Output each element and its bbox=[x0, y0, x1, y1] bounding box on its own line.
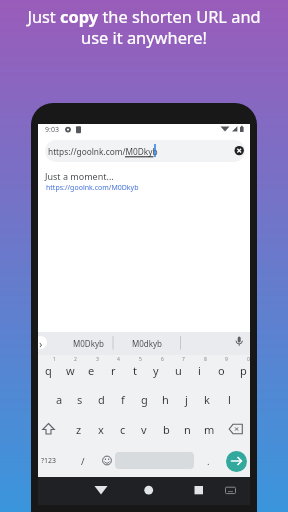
button[interactable]: . bbox=[178, 449, 238, 473]
staticText: z bbox=[76, 422, 82, 437]
staticText: 7 bbox=[182, 356, 185, 363]
button[interactable]: i bbox=[169, 358, 229, 382]
button[interactable]: a bbox=[38, 387, 89, 411]
button[interactable] bbox=[45, 140, 245, 162]
button[interactable] bbox=[100, 453, 114, 468]
staticText: . bbox=[207, 455, 210, 468]
button[interactable]: M0dkyb bbox=[117, 331, 177, 355]
staticText: e bbox=[88, 363, 95, 378]
staticText: n bbox=[184, 422, 191, 437]
staticText: 0 bbox=[247, 356, 250, 363]
staticText: k bbox=[204, 392, 210, 407]
button[interactable]: c bbox=[93, 417, 153, 441]
staticText: 2 bbox=[74, 356, 77, 363]
staticText: 8 bbox=[204, 356, 207, 363]
staticText: x bbox=[98, 422, 104, 437]
button[interactable]: w bbox=[40, 358, 100, 382]
button[interactable]: f bbox=[93, 387, 153, 411]
button[interactable]: https://goolnk.com/M0Dkyb bbox=[46, 182, 166, 194]
staticText: b bbox=[163, 422, 170, 437]
staticText: › bbox=[39, 336, 43, 349]
staticText: f bbox=[121, 392, 125, 407]
staticText: c bbox=[120, 422, 126, 437]
staticText: r bbox=[111, 363, 116, 378]
button[interactable]: t bbox=[105, 358, 165, 382]
staticText: t bbox=[133, 363, 137, 378]
button[interactable]: b bbox=[136, 417, 196, 441]
button[interactable]: x bbox=[71, 417, 131, 441]
button[interactable]: g bbox=[114, 387, 174, 411]
staticText: h bbox=[162, 392, 169, 407]
staticText: q bbox=[45, 363, 52, 378]
button[interactable]: z bbox=[49, 417, 109, 441]
button[interactable] bbox=[226, 451, 247, 472]
button[interactable]: l bbox=[199, 387, 250, 411]
button[interactable]: y bbox=[126, 358, 186, 382]
button[interactable]: ?123 bbox=[38, 449, 79, 473]
button[interactable]: › bbox=[38, 336, 47, 349]
staticText: u bbox=[175, 363, 182, 378]
staticText: s bbox=[77, 392, 83, 407]
button[interactable]: q bbox=[38, 358, 78, 382]
staticText: Just copy the shorten URL and use it any… bbox=[0, 5, 288, 49]
button[interactable]: s bbox=[50, 387, 110, 411]
button[interactable] bbox=[231, 143, 247, 159]
button[interactable] bbox=[222, 482, 239, 498]
button[interactable] bbox=[232, 335, 247, 350]
staticText: https://goolnk.com/M0Dkyb bbox=[48, 146, 158, 157]
staticText: w bbox=[66, 363, 75, 378]
staticText: p bbox=[240, 363, 247, 378]
staticText: 6 bbox=[161, 356, 164, 363]
staticText: https://goolnk.com/M0Dkyb bbox=[46, 183, 139, 193]
button[interactable]: v bbox=[114, 417, 174, 441]
staticText: M0dkyb bbox=[132, 338, 163, 349]
button[interactable]: o bbox=[191, 358, 250, 382]
button[interactable]: j bbox=[156, 387, 216, 411]
staticText: i bbox=[198, 363, 201, 378]
button[interactable] bbox=[228, 421, 245, 437]
staticText: ?123 bbox=[41, 456, 57, 466]
staticText: o bbox=[218, 363, 225, 378]
button[interactable]: M0Dkyb bbox=[58, 331, 118, 355]
staticText: v bbox=[141, 422, 147, 437]
button[interactable]: / bbox=[53, 449, 113, 473]
staticText: d bbox=[98, 392, 105, 407]
staticText: / bbox=[81, 455, 85, 468]
button[interactable] bbox=[140, 482, 158, 498]
button[interactable]: n bbox=[157, 417, 217, 441]
staticText: 9:03 bbox=[45, 125, 59, 135]
button[interactable]: d bbox=[71, 387, 131, 411]
staticText: Just a moment... bbox=[45, 170, 114, 182]
button[interactable]: r bbox=[83, 358, 143, 382]
staticText: m bbox=[204, 422, 215, 437]
staticText: a bbox=[56, 392, 63, 407]
button[interactable]: h bbox=[135, 387, 195, 411]
button[interactable] bbox=[40, 421, 57, 437]
button[interactable] bbox=[190, 482, 208, 498]
staticText: l bbox=[228, 392, 231, 407]
staticText: g bbox=[141, 392, 148, 407]
staticText: y bbox=[153, 363, 159, 378]
staticText: M0Dkyb bbox=[73, 338, 104, 349]
staticText: 5 bbox=[139, 356, 142, 363]
staticText: j bbox=[185, 392, 188, 407]
button[interactable]: e bbox=[61, 358, 121, 382]
staticText: 1 bbox=[53, 356, 56, 363]
staticText: 4 bbox=[117, 356, 120, 363]
button[interactable] bbox=[91, 482, 111, 498]
button[interactable]: p bbox=[213, 358, 250, 382]
button[interactable]: m bbox=[179, 417, 239, 441]
button[interactable]: u bbox=[148, 358, 208, 382]
staticText: 9 bbox=[225, 356, 228, 363]
staticText: 3 bbox=[96, 356, 99, 363]
button[interactable]: k bbox=[177, 387, 237, 411]
